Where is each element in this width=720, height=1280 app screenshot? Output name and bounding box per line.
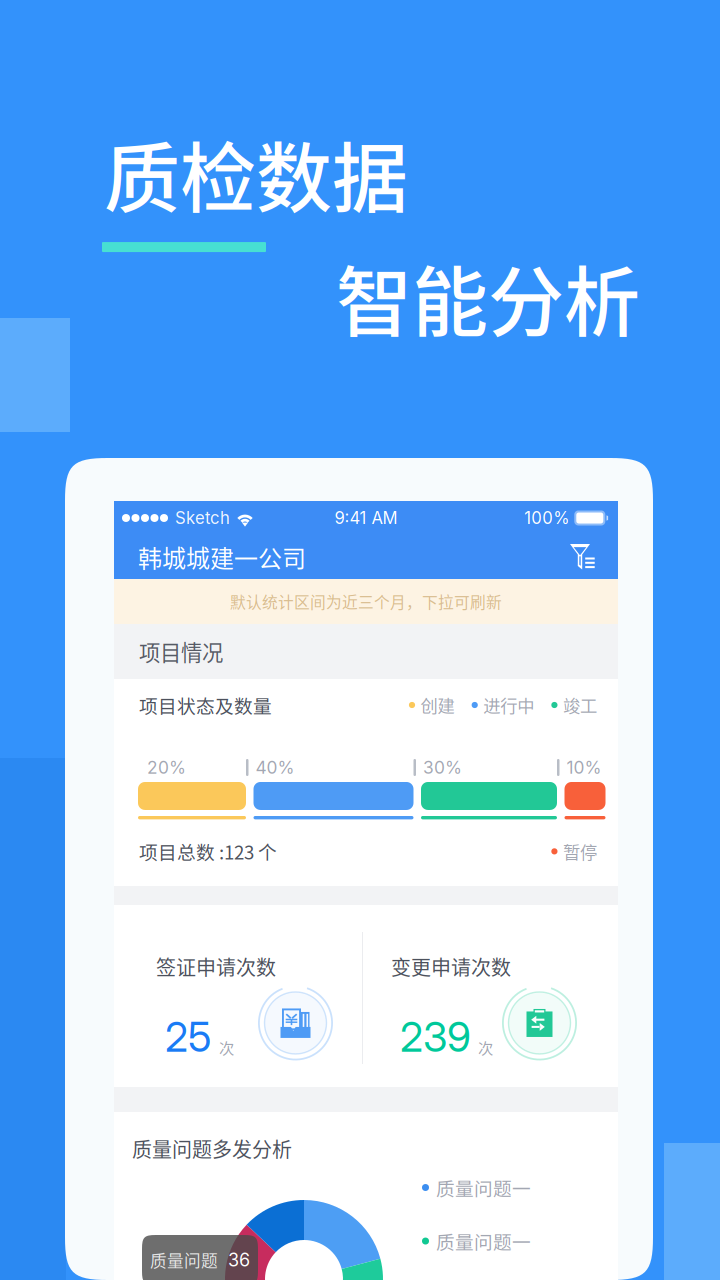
staticText: 10% [566, 757, 601, 778]
staticText: 100% [524, 508, 569, 528]
staticText: 次 [478, 1036, 493, 1058]
staticText: 暂停 [563, 839, 597, 864]
staticText: 质量问题一 [436, 1227, 531, 1254]
staticText: 次 [219, 1036, 234, 1058]
staticText: 质检数据 [104, 118, 408, 228]
staticText: 项目情况 [139, 636, 223, 667]
staticText: 韩城城建一公司 [138, 540, 306, 574]
staticText: 36 [228, 1249, 250, 1271]
staticText: 40% [255, 757, 294, 778]
staticText: 9:41 AM [334, 508, 397, 528]
staticText: 25 [165, 1012, 212, 1061]
staticText: Sketch [175, 508, 230, 528]
staticText: 默认统计区间为近三个月，下拉可刷新 [230, 590, 502, 613]
staticText: 质量问题多发分析 [132, 1134, 292, 1163]
staticText: 项目状态及数量 [139, 691, 272, 718]
staticText: 进行中 [483, 692, 534, 718]
staticText: 质量问题 [150, 1248, 218, 1272]
staticText: 项目总数 :123 个 [139, 838, 277, 865]
staticText: 20% [147, 757, 186, 778]
staticText: 239 [400, 1012, 471, 1061]
staticText: 30% [423, 757, 462, 778]
staticText: 质量问题一 [436, 1174, 531, 1201]
staticText: 竣工 [563, 692, 597, 718]
staticText: 变更申请次数 [391, 952, 511, 981]
staticText: 创建 [421, 692, 455, 718]
staticText: 智能分析 [336, 242, 640, 352]
button[interactable]: 筛选 [562, 535, 606, 579]
staticText: 签证申请次数 [156, 952, 276, 981]
